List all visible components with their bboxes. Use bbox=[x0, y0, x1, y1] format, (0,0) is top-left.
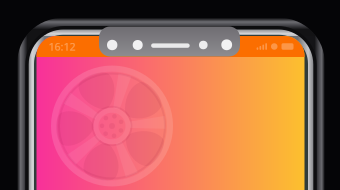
staticText: 16:12 bbox=[48, 39, 75, 54]
